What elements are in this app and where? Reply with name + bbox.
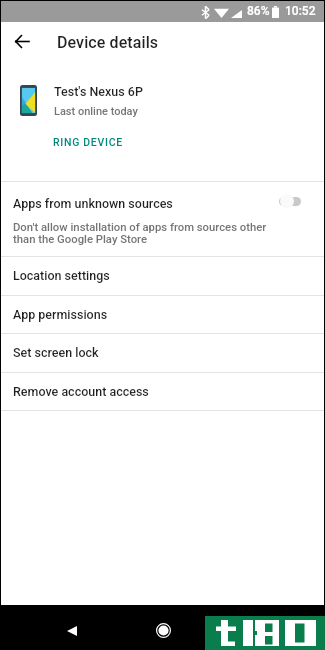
- staticText: Test's Nexus 6P: [54, 84, 143, 99]
- button[interactable]: RING DEVICE: [46, 131, 130, 153]
- staticText: Location settings: [13, 268, 110, 283]
- staticText: RING DEVICE: [53, 136, 123, 148]
- button[interactable]: App permissions: [1, 295, 324, 334]
- staticText: Set screen lock: [13, 345, 99, 360]
- staticText: 86%: [247, 4, 270, 18]
- staticText: Don't allow installation of apps from so…: [13, 221, 277, 246]
- button[interactable]: Back: [67, 623, 85, 639]
- button[interactable]: Location settings: [1, 256, 324, 295]
- staticText: Remove account access: [13, 384, 149, 399]
- button[interactable]: Remove account access: [1, 372, 324, 411]
- staticText: Last online today: [54, 105, 138, 118]
- staticText: 10:52: [285, 4, 316, 18]
- staticText: Device details: [57, 33, 159, 52]
- button[interactable]: Home: [152, 619, 174, 641]
- staticText: Apps from unknown sources: [13, 196, 173, 211]
- button[interactable]: Set screen lock: [1, 333, 324, 372]
- staticText: App permissions: [13, 307, 108, 322]
- button[interactable]: Back: [8, 28, 35, 55]
- button[interactable]: Apps from unknown sources: [1, 181, 324, 256]
